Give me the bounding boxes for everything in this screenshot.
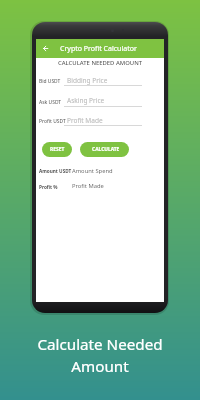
staticText: CALCULATE (92, 146, 120, 153)
staticText: CALCULATE NEEDED AMOUNT (36, 59, 164, 67)
staticText: Profit USDT (39, 118, 66, 125)
staticText: Crypto Profit Calculator (60, 44, 137, 54)
staticText: Ask USDT (39, 99, 62, 106)
staticText: Profit Made (72, 182, 104, 190)
staticText: Asking Price (67, 96, 105, 105)
staticText: Bidding Price (67, 76, 108, 85)
button[interactable]: RESET (42, 142, 72, 157)
staticText: Amount Spend (72, 167, 113, 175)
staticText: Amount USDT (39, 168, 72, 174)
staticText: Profit Made (67, 116, 103, 125)
button[interactable]: Back (38, 39, 52, 58)
staticText: RESET (50, 146, 65, 153)
staticText: Calculate Needed Amount (37, 334, 163, 376)
staticText: Profit % (39, 184, 58, 190)
staticText: Bid USDT (39, 78, 61, 85)
button[interactable]: CALCULATE (80, 142, 129, 157)
